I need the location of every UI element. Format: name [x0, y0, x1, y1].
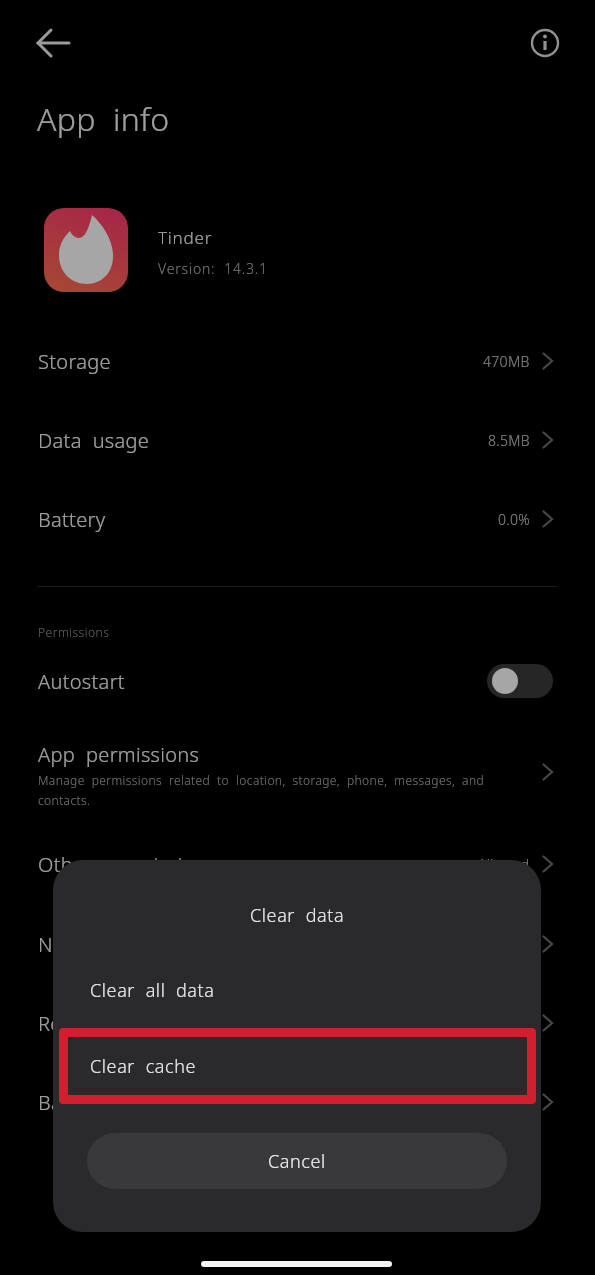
- button[interactable]: [487, 664, 553, 698]
- staticText: Cancel: [268, 1149, 326, 1174]
- button[interactable]: Notifications: [0, 904, 595, 984]
- button[interactable]: Cancel: [87, 1133, 507, 1189]
- button[interactable]: Clear cache: [59, 1028, 536, 1104]
- button[interactable]: Clear all data: [53, 956, 541, 1024]
- staticText: Battery: [38, 506, 106, 533]
- staticText: 0.0%: [498, 510, 530, 529]
- staticText: Allowed: [478, 855, 530, 874]
- staticText: Permissions: [38, 624, 110, 640]
- staticText: Manage permissions related to location, …: [38, 772, 485, 788]
- staticText: Battery saver: [38, 1089, 167, 1116]
- staticText: App permissions: [38, 741, 200, 768]
- staticText: 470MB: [483, 352, 530, 371]
- staticText: Tinder: [158, 226, 213, 249]
- staticText: Clear cache: [90, 1054, 197, 1079]
- staticText: 8.5MB: [488, 431, 530, 450]
- button[interactable]: Other permissions: [0, 824, 595, 904]
- staticText: Other permissions: [38, 851, 217, 878]
- staticText: Data usage: [38, 427, 150, 454]
- staticText: Storage: [38, 348, 111, 375]
- staticText: Clear data: [250, 903, 345, 928]
- staticText: Clear all data: [90, 978, 215, 1003]
- button[interactable]: Storage: [0, 321, 595, 401]
- staticText: Notifications: [38, 931, 156, 958]
- button[interactable]: Data usage: [0, 400, 595, 480]
- staticText: Restrict data usage: [38, 1010, 229, 1037]
- staticText: Autostart: [38, 668, 125, 695]
- button[interactable]: Autostart: [0, 641, 595, 721]
- button[interactable]: [525, 23, 565, 63]
- button[interactable]: Battery: [0, 479, 595, 559]
- button[interactable]: App permissions: [0, 728, 595, 820]
- button[interactable]: Restrict data usage: [0, 983, 595, 1063]
- staticText: App info: [37, 97, 170, 141]
- staticText: Version: 14.3.1: [158, 259, 268, 278]
- button[interactable]: [28, 23, 72, 63]
- staticText: contacts.: [38, 792, 91, 808]
- button[interactable]: Battery saver: [0, 1062, 595, 1142]
